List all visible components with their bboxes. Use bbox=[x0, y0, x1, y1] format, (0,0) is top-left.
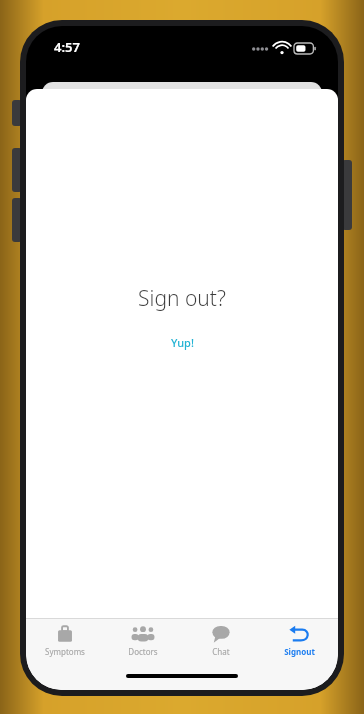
staticText: Symptoms bbox=[45, 646, 85, 657]
staticText: 4:57 bbox=[54, 38, 80, 56]
staticText: Doctors bbox=[128, 646, 158, 657]
button[interactable]: Signout bbox=[260, 619, 338, 664]
button[interactable]: Chat bbox=[182, 619, 260, 664]
staticText: Chat bbox=[212, 646, 230, 657]
staticText: Signout bbox=[284, 646, 315, 657]
button[interactable]: Symptoms bbox=[26, 619, 104, 664]
button[interactable]: Doctors bbox=[104, 619, 182, 664]
button[interactable]: Yup! bbox=[161, 331, 204, 354]
staticText: Sign out? bbox=[138, 284, 226, 313]
staticText: Yup! bbox=[171, 335, 194, 350]
